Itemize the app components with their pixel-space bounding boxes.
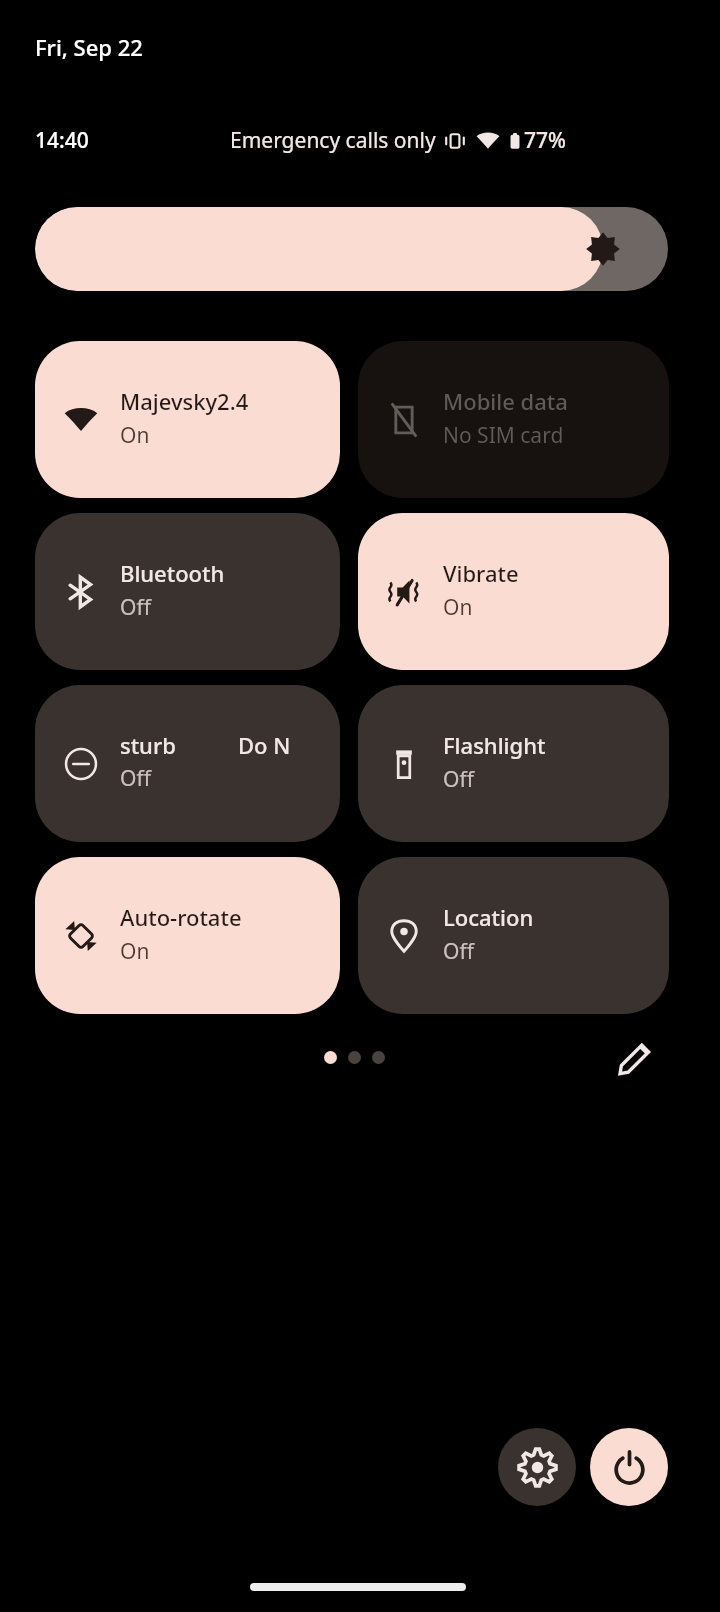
staticText: Majevsky2.4 xyxy=(120,386,249,416)
button[interactable]: Vibrate xyxy=(358,513,669,670)
staticText: Flashlight xyxy=(443,730,546,760)
staticText: Off xyxy=(443,937,474,966)
button[interactable]: Majevsky2.4 xyxy=(35,341,340,498)
staticText: On xyxy=(443,593,473,622)
staticText: Off xyxy=(120,593,151,622)
button[interactable]: Auto-rotate xyxy=(35,857,340,1014)
staticText: Location xyxy=(443,902,534,932)
staticText: 14:40 xyxy=(35,126,89,155)
staticText: 77% xyxy=(524,126,566,155)
button[interactable]: Do Not Disturb Off xyxy=(35,685,340,842)
button[interactable]: Mobile data xyxy=(358,341,669,498)
staticText: Off xyxy=(120,764,151,793)
button[interactable]: Power xyxy=(590,1428,668,1506)
staticText: No SIM card xyxy=(443,421,564,450)
staticText: On xyxy=(120,937,150,966)
staticText: On xyxy=(120,421,150,450)
staticText: sturb xyxy=(120,730,176,760)
staticText: Emergency calls only xyxy=(230,126,436,155)
button[interactable]: Edit tiles xyxy=(600,1023,670,1093)
button[interactable]: Settings xyxy=(498,1428,576,1506)
staticText: Fri, Sep 22 xyxy=(35,32,143,62)
staticText: Off xyxy=(443,765,474,794)
button[interactable]: Flashlight xyxy=(358,685,669,842)
staticText: Bluetooth xyxy=(120,558,225,588)
staticText: Vibrate xyxy=(443,558,519,588)
staticText: Auto-rotate xyxy=(120,902,242,932)
staticText: Mobile data xyxy=(443,386,568,416)
staticText: Do N xyxy=(238,730,291,760)
button[interactable]: Location xyxy=(358,857,669,1014)
button[interactable]: Bluetooth xyxy=(35,513,340,670)
button[interactable]: Brightness xyxy=(35,207,668,291)
